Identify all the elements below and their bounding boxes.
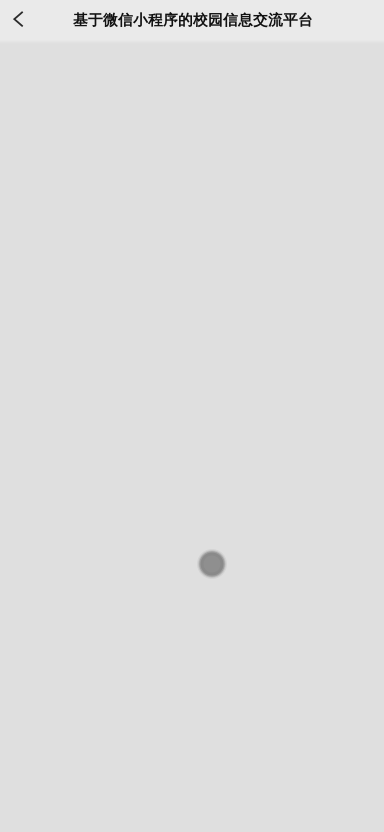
staticText: 基于微信小程序的校园信息交流平台	[73, 11, 313, 29]
button[interactable]: Back	[0, 0, 37, 40]
